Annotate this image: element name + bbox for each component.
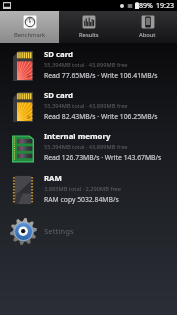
staticText: Read 77.65MB/s · Write 106.41MB/s	[44, 71, 158, 80]
staticText: Settings	[44, 226, 74, 237]
staticText: Read 82.43MB/s · Write 106.25MB/s	[44, 112, 158, 121]
button[interactable]: Results	[59, 11, 118, 43]
button[interactable]: About	[118, 11, 177, 43]
staticText: SD card	[44, 49, 73, 60]
staticText: Results	[79, 31, 99, 39]
button[interactable]: SD card	[0, 90, 177, 129]
staticText: RAM	[44, 173, 62, 184]
staticText: About	[139, 31, 156, 39]
staticText: 55,394MB total · 43,899MB free	[44, 102, 128, 110]
staticText: Benchmark	[14, 31, 46, 39]
button[interactable]: RAM	[0, 173, 177, 212]
staticText: 3,885MB total · 2,290MB free	[44, 185, 122, 193]
staticText: 55,394MB total · 43,899MB free	[44, 143, 128, 151]
button[interactable]: Settings	[0, 212, 177, 251]
staticText: 19:23	[156, 1, 174, 11]
staticText: RAM copy 5032.84MB/s	[44, 195, 119, 204]
staticText: 89%	[139, 1, 153, 11]
staticText: 55,394MB total · 43,899MB free	[44, 61, 128, 69]
staticText: Internal memory	[44, 131, 111, 142]
staticText: Read 126.73MB/s · Write 143.67MB/s	[44, 153, 162, 162]
button[interactable]: SD card	[0, 49, 177, 88]
button[interactable]: Benchmark	[0, 11, 59, 43]
button[interactable]: Internal memory	[0, 131, 177, 170]
staticText: SD card	[44, 90, 73, 101]
